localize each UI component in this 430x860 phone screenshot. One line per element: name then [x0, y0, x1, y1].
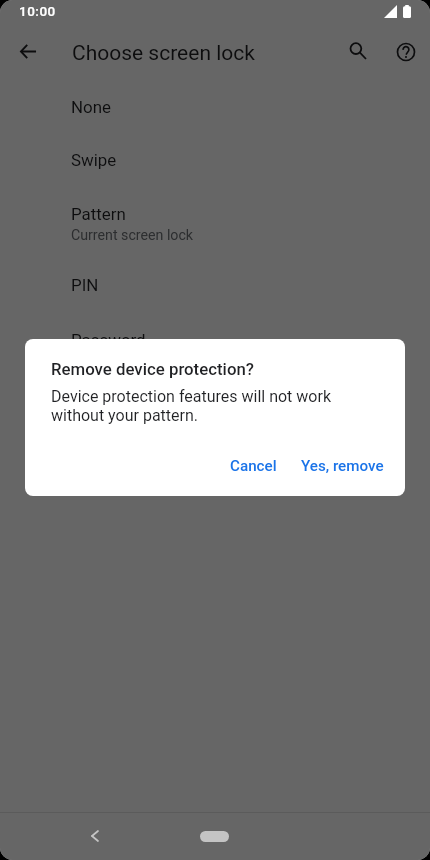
staticText: None: [71, 97, 111, 117]
staticText: Swipe: [71, 150, 117, 170]
staticText: Yes, remove: [301, 457, 384, 475]
staticText: Cancel: [230, 457, 277, 475]
button[interactable]: PIN: [0, 258, 430, 311]
button[interactable]: Cancel: [222, 449, 285, 483]
button[interactable]: Back: [4, 27, 52, 75]
button[interactable]: Help: [382, 28, 430, 76]
staticText: Remove device protection?: [51, 359, 254, 379]
staticText: PIN: [71, 275, 99, 295]
staticText: Choose screen lock: [72, 41, 255, 66]
button[interactable]: Password: [0, 313, 430, 366]
staticText: Current screen lock: [71, 227, 194, 244]
button[interactable]: Search: [334, 27, 382, 75]
button[interactable]: Pattern: [0, 187, 430, 258]
staticText: Pattern: [71, 204, 126, 224]
staticText: Password: [71, 330, 146, 350]
button[interactable]: Back: [79, 820, 111, 852]
button[interactable]: Yes, remove: [293, 449, 392, 483]
button[interactable]: Swipe: [0, 133, 430, 186]
staticText: Device protection features will not work…: [51, 387, 336, 425]
staticText: 10:00: [19, 3, 56, 19]
button[interactable]: None: [0, 80, 430, 133]
